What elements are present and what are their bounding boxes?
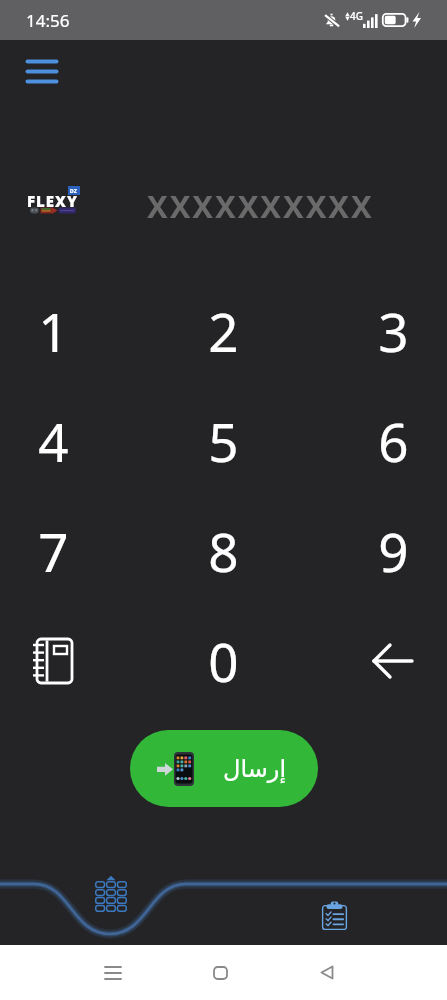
staticText: 7 [38,515,69,587]
staticText: 4G [350,9,363,23]
button[interactable]: 9 [338,496,447,606]
button[interactable]: 8 [168,496,278,606]
button[interactable]: 4 [0,386,108,496]
staticText: 14:56 [26,9,70,32]
button[interactable]: 5 [168,386,278,496]
staticText: 2 [208,295,239,367]
staticText: 3 [378,295,409,367]
button[interactable]: 2 [168,276,278,386]
button[interactable]: Recents [83,945,143,1000]
button[interactable]: 1 [0,276,108,386]
staticText: XXXXXXXXXX [147,185,374,227]
button[interactable]: Backspace [338,606,447,716]
button[interactable]: 0 [168,606,278,716]
staticText: 4 [38,405,69,477]
button[interactable]: Back [297,945,357,1000]
button[interactable]: 6 [338,386,447,496]
staticText: FLEXY [27,191,78,211]
button[interactable]: History [321,901,348,930]
other: Backspace [372,643,414,679]
button[interactable]: Contacts [0,606,108,716]
staticText: DZ [70,187,78,195]
button[interactable]: Menu [6,42,62,98]
staticText: 9 [378,515,409,587]
other: Contacts [33,638,73,684]
button[interactable]: 3 [338,276,447,386]
button[interactable]: إرسال [130,730,318,807]
staticText: 6 [378,405,409,477]
button[interactable]: Home [190,945,250,1000]
staticText: إرسال [223,755,287,783]
staticText: 0 [208,625,239,697]
staticText: 8 [208,515,239,587]
button[interactable]: 7 [0,496,108,606]
staticText: 5 [208,405,239,477]
staticText: 1 [38,295,69,367]
button[interactable]: Dialpad [95,875,127,912]
